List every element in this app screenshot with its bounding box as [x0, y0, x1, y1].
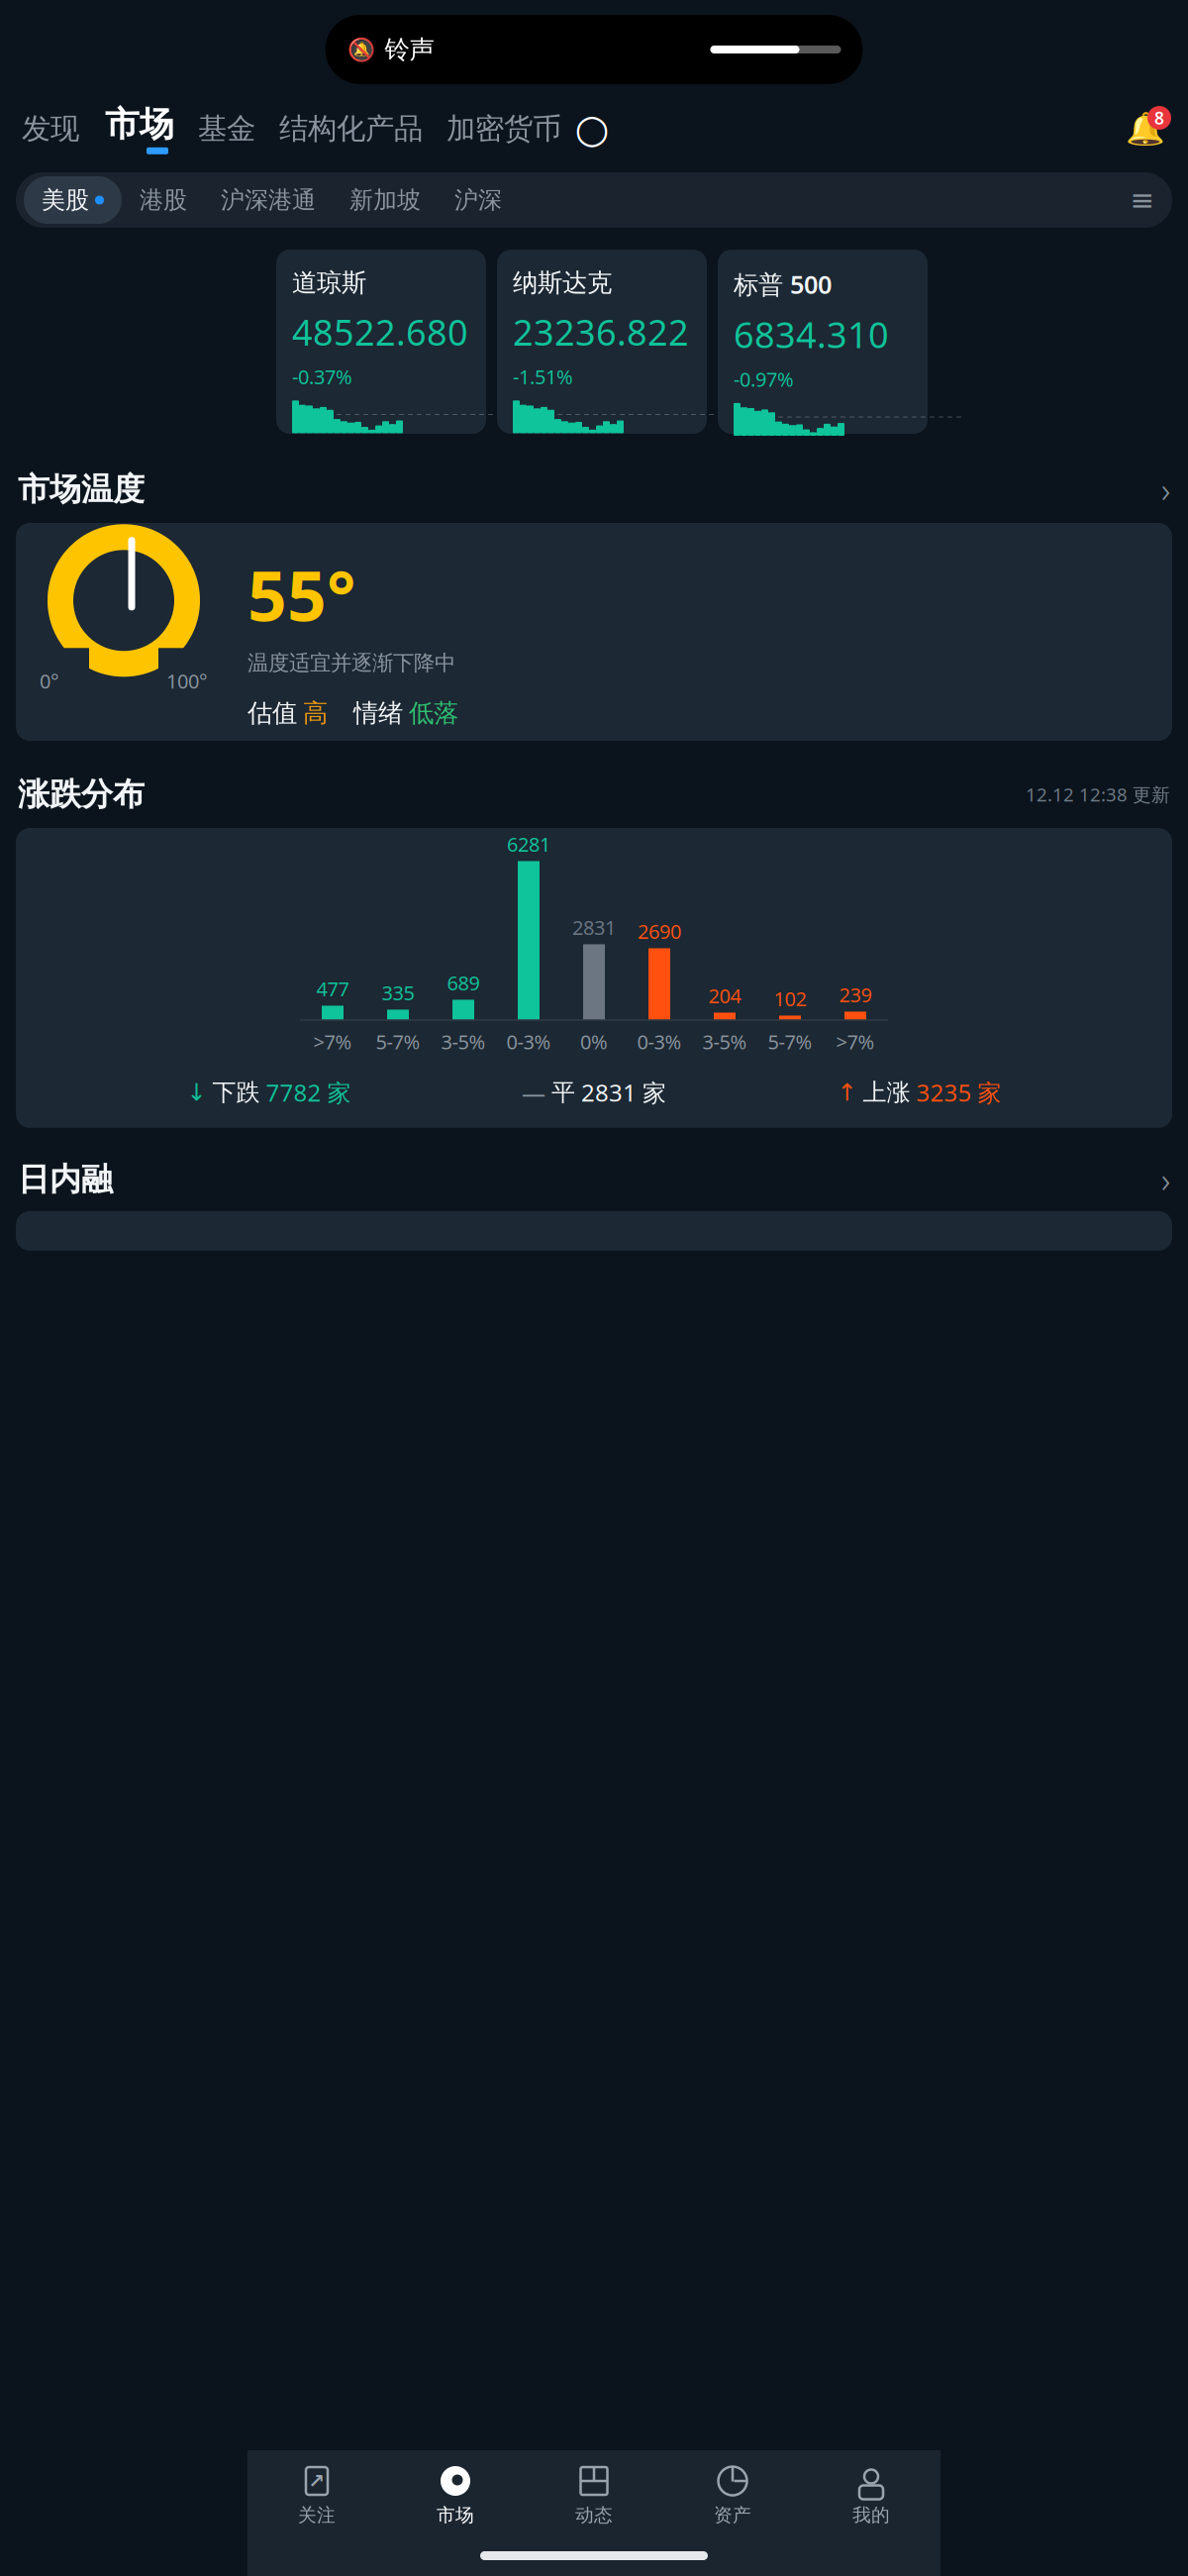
button[interactable]: 市场温度 — [0, 467, 1188, 511]
staticText: 🔕 — [347, 37, 375, 62]
staticText: ≡ — [1130, 184, 1155, 217]
button[interactable]: 发现 — [22, 103, 79, 155]
staticText: 3235 家 — [916, 1077, 1001, 1108]
staticText: -0.97% — [734, 366, 794, 392]
staticText: 低落 — [409, 698, 458, 729]
staticText: 沪深港通 — [221, 185, 316, 215]
staticText: 0-3% — [506, 1028, 551, 1055]
button[interactable]: 道琼斯 — [276, 250, 486, 434]
button[interactable]: 加密货币 — [446, 103, 561, 155]
button[interactable]: 市场 — [386, 2456, 525, 2535]
button[interactable]: 涨跌分布 — [0, 773, 1188, 816]
staticText: 下跌 — [212, 1078, 260, 1107]
staticText: › — [1161, 466, 1170, 512]
staticText: 道琼斯 — [292, 267, 366, 298]
staticText: 204 — [708, 982, 741, 1009]
staticText: — — [522, 1077, 545, 1108]
staticText: 上涨 — [863, 1078, 910, 1107]
button[interactable]: 标普 500 — [718, 250, 928, 434]
staticText: 市场温度 — [18, 470, 145, 509]
staticText: >7% — [836, 1028, 875, 1055]
staticText: 市场 — [105, 103, 174, 145]
staticText: 日内融 — [18, 1160, 113, 1199]
staticText: 7782 家 — [266, 1077, 351, 1108]
staticText: 铃声 — [385, 34, 434, 65]
staticText: 0° — [40, 668, 59, 694]
button[interactable]: 美股 — [24, 176, 122, 224]
staticText: 估值 — [247, 698, 297, 729]
button[interactable]: 结构化产品 — [279, 103, 423, 155]
staticText: ○ — [575, 106, 609, 151]
staticText: 结构化产品 — [279, 111, 423, 147]
staticText: 新加坡 — [349, 185, 421, 215]
staticText: -0.37% — [292, 363, 352, 390]
staticText: 情绪 — [353, 698, 403, 729]
staticText: 102 — [774, 985, 806, 1012]
staticText: 港股 — [140, 185, 187, 215]
staticText: 477 — [316, 975, 349, 1002]
staticText: 沪深 — [454, 185, 502, 215]
staticText: 标普 500 — [734, 267, 832, 301]
staticText: 我的 — [852, 2504, 890, 2526]
button[interactable]: 搜索 — [571, 103, 613, 155]
staticText: 0-3% — [637, 1028, 682, 1055]
staticText: 5-7% — [376, 1028, 420, 1055]
button[interactable]: 基金 — [198, 103, 255, 155]
button[interactable]: 通知 — [1119, 103, 1172, 155]
staticText: 239 — [839, 981, 872, 1008]
staticText: -1.51% — [513, 363, 573, 390]
button[interactable]: 我的 — [802, 2456, 940, 2535]
staticText: 平 — [551, 1078, 575, 1107]
button[interactable]: 动态 — [525, 2456, 663, 2535]
staticText: 23236.822 — [513, 308, 689, 355]
button[interactable]: 日内融 — [0, 1158, 1188, 1201]
staticText: ↓ — [187, 1079, 206, 1106]
button[interactable]: 更多市场 — [1121, 176, 1164, 224]
staticText: 3-5% — [702, 1028, 747, 1055]
staticText: 市场 — [437, 2504, 474, 2526]
staticText: 动态 — [575, 2504, 613, 2526]
button[interactable]: 港股 — [130, 176, 197, 224]
staticText: 2831 家 — [581, 1077, 666, 1108]
staticText: 689 — [447, 969, 480, 996]
staticText: 关注 — [298, 2504, 336, 2526]
staticText: ↑ — [837, 1079, 857, 1106]
staticText: 12.12 12:38 更新 — [1026, 782, 1170, 807]
staticText: 高 — [303, 698, 328, 729]
staticText: 0% — [580, 1028, 608, 1055]
staticText: 涨跌分布 — [18, 775, 145, 814]
staticText: 100° — [166, 668, 208, 694]
staticText: 3-5% — [441, 1028, 486, 1055]
button[interactable]: 市场 — [105, 101, 174, 156]
staticText: 6834.310 — [734, 311, 889, 358]
staticText: 发现 — [22, 111, 79, 147]
button[interactable]: 资产 — [663, 2456, 802, 2535]
staticText: 55° — [247, 549, 355, 640]
staticText: 5-7% — [768, 1028, 812, 1055]
staticText: 2690 — [638, 918, 681, 944]
staticText: 6281 — [507, 831, 550, 857]
staticText: 8 — [1154, 106, 1164, 129]
button[interactable]: ↗ — [247, 2456, 386, 2535]
staticText: 温度适宜并逐渐下降中 — [247, 650, 455, 676]
button[interactable]: 纳斯达克 — [497, 250, 707, 434]
staticText: 基金 — [198, 111, 255, 147]
staticText: 335 — [382, 979, 414, 1006]
staticText: 2831 — [572, 914, 616, 940]
button[interactable]: 沪深港通 — [211, 176, 326, 224]
staticText: › — [1161, 1157, 1170, 1202]
staticText: 美股 — [42, 185, 89, 215]
staticText: 纳斯达克 — [513, 267, 612, 298]
staticText: >7% — [313, 1028, 352, 1055]
staticText: 48522.680 — [292, 308, 468, 355]
staticText: ↗ — [308, 2470, 325, 2492]
button[interactable]: 沪深 — [445, 176, 512, 224]
button[interactable]: 新加坡 — [340, 176, 431, 224]
staticText: 资产 — [714, 2504, 751, 2526]
staticText: 加密货币 — [446, 111, 561, 147]
staticText: 🔔 — [1126, 111, 1165, 147]
